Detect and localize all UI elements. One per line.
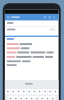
button[interactable]: Compose email [0, 0, 64, 100]
